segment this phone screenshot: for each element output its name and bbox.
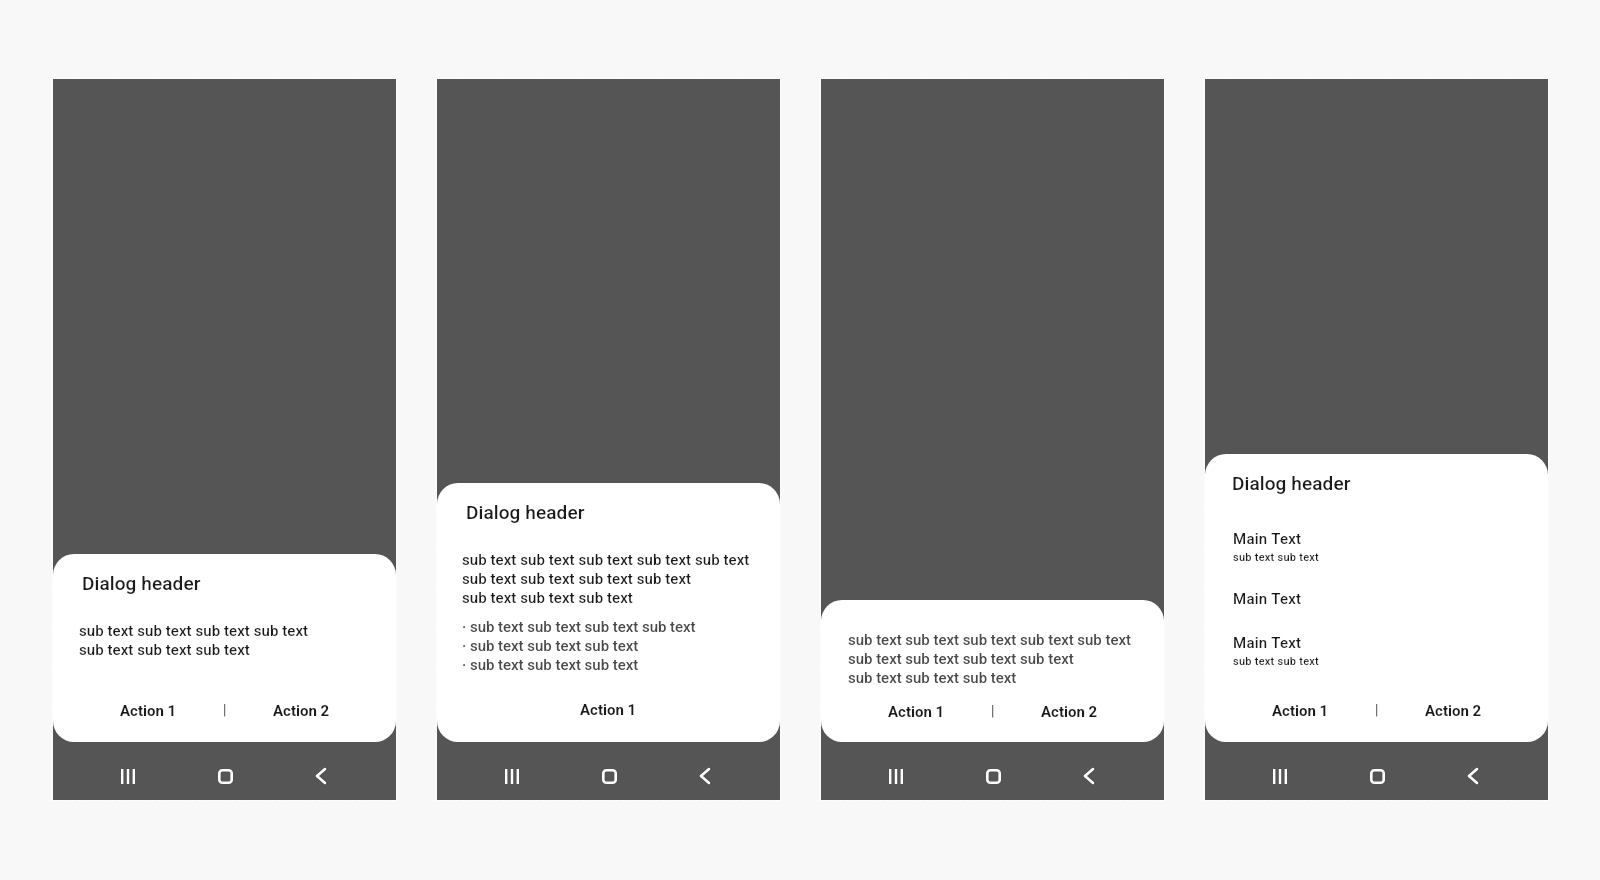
staticText: |	[223, 702, 227, 718]
button[interactable]: Back	[1072, 759, 1106, 793]
button[interactable]: Action 2	[1413, 698, 1494, 722]
staticText: Dialog header	[1232, 472, 1351, 494]
button[interactable]: Home	[208, 759, 242, 793]
staticText: Action 1	[1272, 702, 1329, 718]
staticText: Action 1	[120, 702, 177, 718]
button[interactable]: Action 1	[1260, 698, 1341, 722]
button[interactable]: Action 1	[108, 698, 189, 722]
button[interactable]: Action 1	[568, 697, 649, 721]
staticText: |	[1375, 702, 1379, 718]
button[interactable]: Recent apps	[1263, 759, 1297, 793]
button[interactable]: Recent apps	[495, 759, 529, 793]
button[interactable]: Home	[1360, 759, 1394, 793]
staticText: Main Text	[1233, 634, 1302, 652]
staticText: Action 2	[1425, 702, 1482, 718]
staticText: sub text sub text	[1233, 551, 1320, 564]
staticText: Action 2	[273, 702, 330, 718]
staticText: Dialog header	[82, 572, 201, 594]
button[interactable]: Home	[976, 759, 1010, 793]
button[interactable]: Back	[1456, 759, 1490, 793]
staticText: Main Text	[1233, 590, 1302, 608]
button[interactable]: Back	[688, 759, 722, 793]
button[interactable]: Main Text	[1232, 634, 1526, 668]
button[interactable]: Main Text	[1232, 590, 1526, 608]
staticText: sub text sub text sub text sub text sub …	[462, 551, 750, 607]
button[interactable]: Home	[592, 759, 626, 793]
staticText: sub text sub text sub text sub text sub …	[848, 631, 1131, 687]
staticText: sub text sub text	[1233, 655, 1320, 668]
button[interactable]: Action 1	[876, 699, 957, 723]
staticText: Action 2	[1041, 703, 1098, 719]
staticText: Action 1	[888, 703, 945, 719]
staticText: Action 1	[580, 701, 637, 717]
button[interactable]: Back	[304, 759, 338, 793]
button[interactable]: Action 2	[1029, 699, 1110, 723]
button[interactable]: Main Text	[1232, 530, 1526, 564]
staticText: · sub text sub text sub text sub text · …	[462, 618, 696, 674]
button[interactable]: Recent apps	[111, 759, 145, 793]
button[interactable]: Recent apps	[879, 759, 913, 793]
button[interactable]: Action 2	[261, 698, 342, 722]
staticText: Main Text	[1233, 530, 1302, 548]
staticText: |	[991, 703, 995, 719]
staticText: sub text sub text sub text sub text sub …	[79, 622, 309, 659]
staticText: Dialog header	[466, 501, 585, 523]
